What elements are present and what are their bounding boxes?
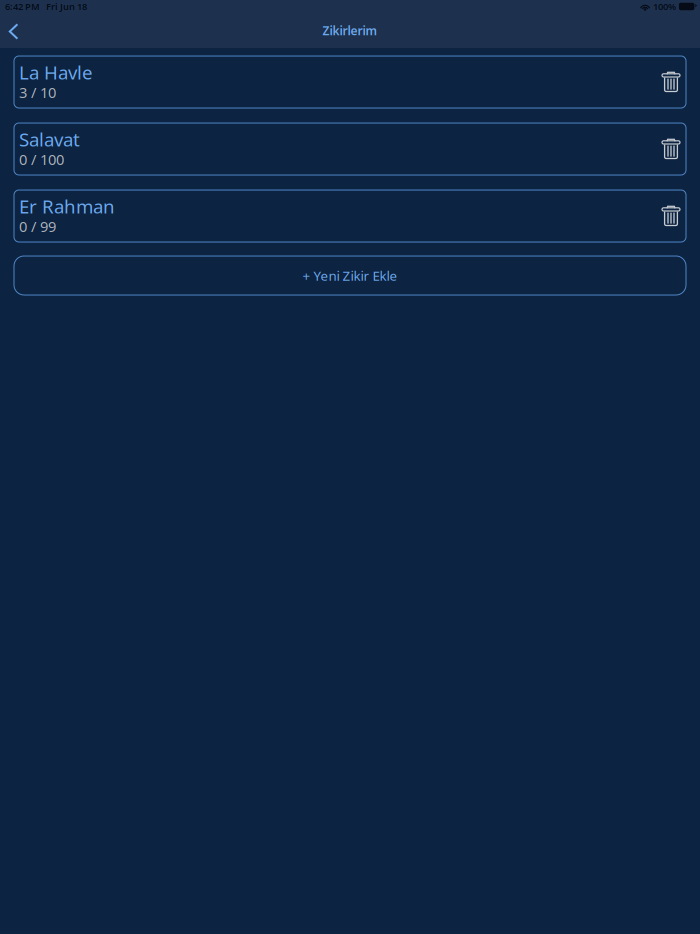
staticText: 100% (653, 0, 676, 13)
staticText: 0 / 100 (19, 150, 64, 169)
staticText: 3 / 10 (19, 83, 56, 102)
staticText: Salavat (19, 127, 80, 152)
staticText: La Havle (19, 60, 93, 85)
staticText: + Yeni Zikir Ekle (302, 267, 397, 284)
button[interactable]: + Yeni Zikir Ekle (14, 256, 686, 295)
staticText: Er Rahman (19, 194, 115, 219)
button[interactable]: Salavat (14, 123, 686, 175)
button[interactable]: Sil (658, 66, 684, 98)
button[interactable]: Geri (0, 16, 27, 44)
staticText: Zikirlerim (322, 22, 377, 38)
button[interactable]: Sil (658, 200, 684, 232)
staticText: 6:42 PM (5, 0, 40, 13)
button[interactable]: Er Rahman (14, 190, 686, 242)
staticText: 0 / 99 (19, 217, 56, 236)
button[interactable]: Sil (658, 133, 684, 165)
button[interactable]: La Havle (14, 56, 686, 108)
staticText: Fri Jun 18 (46, 0, 87, 13)
